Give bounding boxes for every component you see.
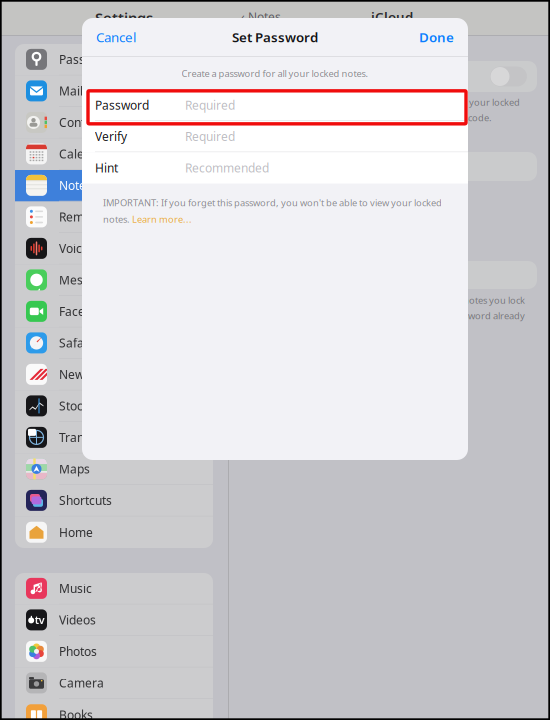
staticText: Mail [59, 83, 83, 99]
staticText: Hint [95, 160, 118, 176]
staticText: notes. [103, 213, 132, 225]
staticText: Notes [59, 177, 92, 193]
staticText: Passwords [59, 51, 119, 67]
staticText: Stocks [59, 398, 95, 414]
button[interactable]: Cancel [82, 18, 150, 56]
staticText: ‹ Notes [241, 9, 281, 25]
button[interactable]: Contacts [15, 107, 213, 138]
button[interactable]: News [15, 359, 213, 390]
staticText: Learn more... [132, 213, 192, 225]
staticText: Reminders [59, 209, 119, 225]
staticText: Safari [59, 335, 92, 351]
button[interactable]: Done [405, 18, 468, 56]
staticText: Music [59, 580, 92, 596]
staticText: Books [59, 707, 93, 720]
staticText: with a different password already [383, 309, 525, 322]
button[interactable]: Maps [15, 453, 213, 485]
staticText: FaceTime [59, 303, 113, 319]
staticText: This will not change the password on any… [259, 294, 525, 306]
staticText: Recommended [185, 160, 269, 176]
button[interactable]: Calendar [15, 138, 213, 170]
button[interactable]: Notes [15, 170, 213, 201]
button[interactable]: Verify [82, 121, 468, 152]
staticText: News [59, 366, 90, 382]
staticText: Create a password for all your locked no… [181, 67, 368, 79]
button[interactable]: Voice Memos [15, 233, 213, 264]
staticText: Required [185, 128, 235, 144]
button[interactable]: Mail [15, 75, 213, 107]
staticText: Messages [59, 272, 116, 288]
staticText: Settings [95, 8, 153, 27]
button[interactable]: Learn more... [132, 213, 192, 225]
staticText: Contacts [59, 114, 108, 130]
staticText: Translate [59, 429, 111, 445]
staticText: Enter a password that will be used when … [259, 96, 520, 108]
button[interactable]: Messages [15, 264, 213, 296]
staticText: tv [35, 613, 45, 627]
button[interactable]: Camera [15, 667, 213, 699]
button[interactable]: Passwords [15, 44, 213, 75]
staticText: Done [419, 28, 454, 46]
button[interactable]: Safari [15, 327, 213, 359]
staticText: Videos [59, 612, 96, 628]
button[interactable]: Music [15, 573, 213, 604]
staticText: Voice Memos [59, 240, 134, 256]
button[interactable]: FaceTime [15, 296, 213, 327]
button[interactable]: tv [15, 604, 213, 636]
button[interactable]: Shortcuts [15, 485, 213, 516]
staticText: Shortcuts [59, 492, 112, 508]
button[interactable]: Password [82, 90, 468, 121]
staticText: Calendar [59, 146, 110, 162]
staticText: Set Password [232, 28, 318, 46]
button[interactable]: Stocks [15, 390, 213, 422]
staticText: Password [95, 97, 149, 113]
staticText: Camera [59, 675, 104, 691]
staticText: Maps [59, 461, 90, 477]
button[interactable]: Photos [15, 636, 213, 667]
staticText: notes, or you can choose to use your dev… [259, 111, 492, 124]
button[interactable]: Hint [82, 152, 468, 183]
staticText: Cancel [96, 28, 136, 46]
button[interactable]: Home [15, 516, 213, 548]
button[interactable]: Books [15, 699, 213, 720]
staticText: Verify [95, 128, 127, 144]
staticText: iCloud [371, 8, 413, 26]
staticText: Photos [59, 643, 97, 659]
staticText: IMPORTANT: If you forget this password, … [103, 196, 442, 209]
button[interactable]: Translate [15, 422, 213, 453]
button[interactable]: Reminders [15, 201, 213, 233]
staticText: Home [59, 524, 93, 540]
staticText: Required [185, 97, 235, 113]
